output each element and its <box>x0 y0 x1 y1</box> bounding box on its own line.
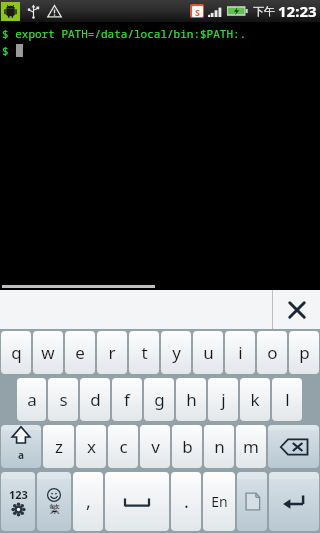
staticText: 下午 <box>253 4 275 18</box>
staticText: $ export PATH=/data/local/bin:$PATH:. <box>2 26 247 41</box>
staticText: s <box>59 388 68 411</box>
staticText: c <box>119 435 128 458</box>
button[interactable]: . <box>171 472 201 531</box>
staticText: e <box>75 341 85 364</box>
button[interactable]: Emoji and input mode <box>37 472 71 531</box>
staticText: g <box>154 388 165 411</box>
staticText: v <box>151 435 160 458</box>
button[interactable]: x <box>76 425 106 468</box>
button[interactable]: h <box>176 378 206 421</box>
button[interactable]: Numbers and settings <box>1 472 35 531</box>
button[interactable]: k <box>240 378 270 421</box>
button[interactable]: Shift <box>1 425 41 468</box>
button[interactable]: r <box>97 331 127 374</box>
staticText: En <box>211 492 228 511</box>
button[interactable]: Close keyboard <box>273 290 320 329</box>
button[interactable]: w <box>33 331 63 374</box>
staticText: k <box>250 388 260 411</box>
button[interactable]: e <box>65 331 95 374</box>
button[interactable]: m <box>236 425 266 468</box>
staticText: . <box>184 489 189 514</box>
staticText: z <box>55 435 63 458</box>
staticText: , <box>86 489 91 514</box>
staticText: b <box>182 435 193 458</box>
staticText: $ <box>2 43 16 58</box>
button[interactable]: q <box>1 331 31 374</box>
staticText: m <box>243 435 259 458</box>
staticText: w <box>41 341 55 364</box>
button[interactable]: g <box>144 378 174 421</box>
staticText: q <box>11 341 22 364</box>
staticText: p <box>299 341 310 364</box>
button[interactable]: t <box>129 331 159 374</box>
button[interactable]: Backspace <box>268 425 319 468</box>
staticText: a <box>18 448 24 461</box>
button[interactable]: a <box>17 378 46 421</box>
staticText: h <box>186 388 197 411</box>
button[interactable]: b <box>172 425 202 468</box>
button[interactable]: f <box>112 378 142 421</box>
button[interactable]: y <box>161 331 191 374</box>
button[interactable]: p <box>289 331 319 374</box>
staticText: x <box>87 435 96 458</box>
button[interactable]: u <box>193 331 223 374</box>
staticText: u <box>203 341 214 364</box>
button[interactable]: i <box>225 331 255 374</box>
button[interactable]: Input method <box>237 472 267 531</box>
button[interactable]: z <box>43 425 74 468</box>
button[interactable]: c <box>108 425 138 468</box>
staticText: a <box>27 388 37 411</box>
staticText: 123 <box>9 487 28 502</box>
button[interactable]: d <box>80 378 110 421</box>
button[interactable]: j <box>208 378 238 421</box>
staticText: t <box>141 341 148 364</box>
staticText: S <box>195 6 200 17</box>
staticText: 12:23 <box>278 1 317 21</box>
button[interactable]: Space <box>105 472 169 531</box>
staticText: l <box>285 388 290 411</box>
button[interactable]: o <box>257 331 287 374</box>
button[interactable]: Enter <box>269 472 319 531</box>
button[interactable]: l <box>272 378 302 421</box>
staticText: f <box>124 388 130 411</box>
button[interactable]: v <box>140 425 170 468</box>
staticText: o <box>267 341 278 364</box>
button[interactable]: n <box>204 425 234 468</box>
staticText: n <box>214 435 225 458</box>
button[interactable]: , <box>73 472 103 531</box>
staticText: i <box>238 341 243 364</box>
staticText: y <box>172 341 181 364</box>
staticText: r <box>108 341 116 364</box>
button[interactable]: $ export PATH=/data/local/bin:$PATH:. <box>0 22 320 290</box>
button[interactable]: En <box>203 472 235 531</box>
button[interactable]: s <box>48 378 78 421</box>
staticText: 繁 <box>49 502 60 516</box>
staticText: d <box>90 388 101 411</box>
staticText: j <box>221 388 226 411</box>
